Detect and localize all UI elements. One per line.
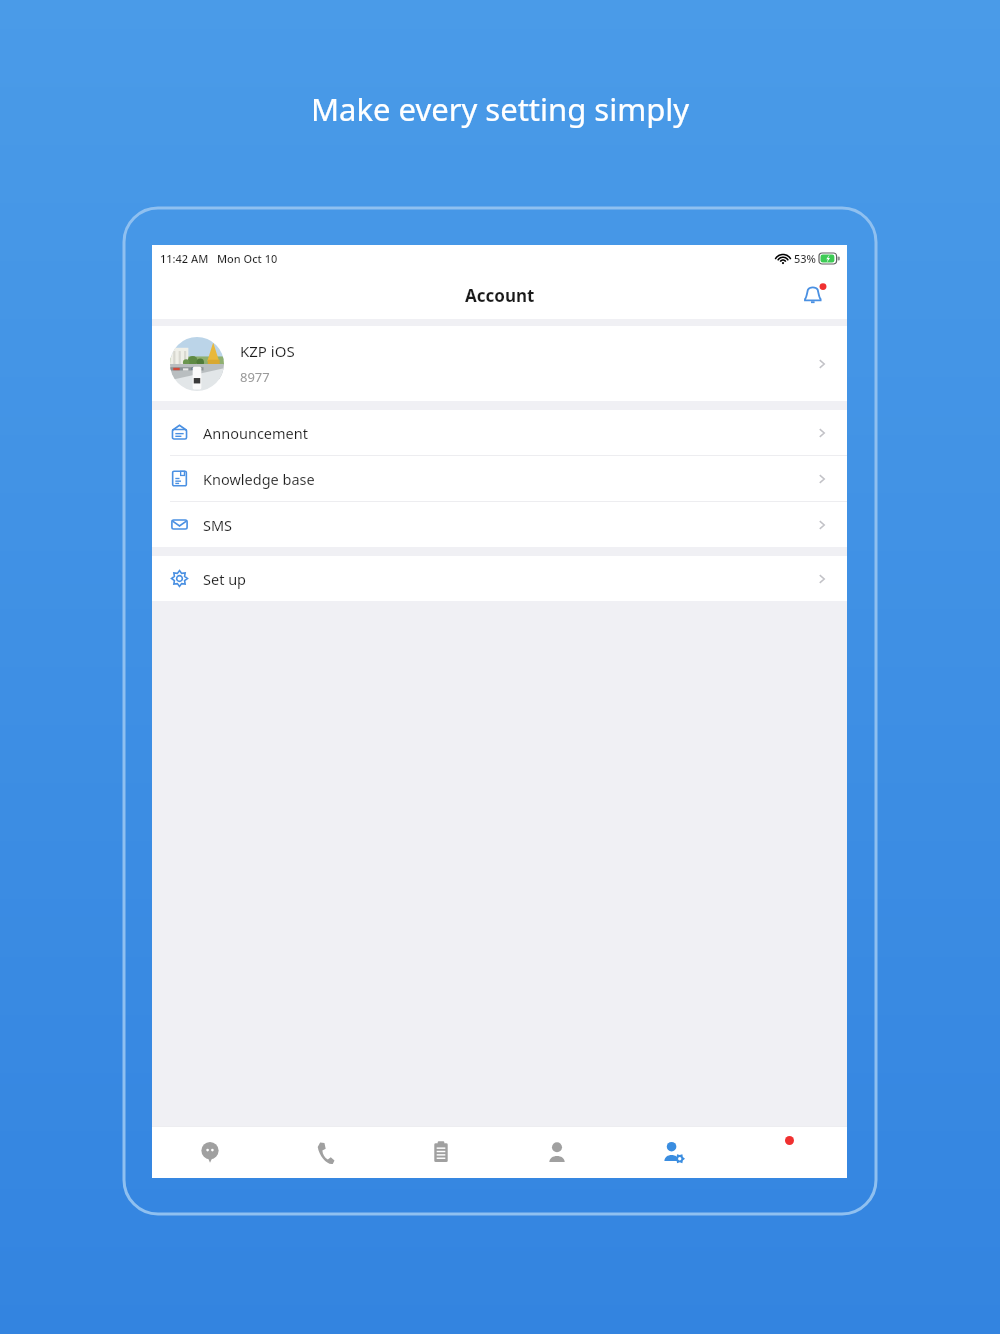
button[interactable]: Knowledge base <box>152 456 847 501</box>
staticText: Mon Oct 10 <box>217 251 278 266</box>
button[interactable]: SMS <box>152 502 847 547</box>
staticText: Announcement <box>203 423 308 443</box>
button[interactable]: KZP iOS <box>152 326 847 401</box>
button[interactable]: Notifications <box>799 280 829 310</box>
staticText: 11:42 AM <box>160 251 209 266</box>
staticText: Set up <box>203 569 247 589</box>
staticText: Knowledge base <box>203 469 315 489</box>
button[interactable]: Announcement <box>152 410 847 455</box>
button[interactable]: Calls <box>267 1126 383 1178</box>
staticText: Make every setting simply <box>0 88 1000 130</box>
staticText: SMS <box>203 515 233 535</box>
staticText: Account <box>465 284 535 307</box>
staticText: 53% <box>794 251 816 266</box>
staticText: KZP iOS <box>240 341 295 361</box>
button[interactable]: Contacts <box>499 1126 615 1178</box>
button[interactable]: Chats <box>152 1126 267 1178</box>
staticText: 8977 <box>240 368 270 386</box>
button[interactable]: Set up <box>152 556 847 601</box>
button[interactable]: Tasks <box>383 1126 499 1178</box>
button[interactable]: Account <box>615 1126 731 1178</box>
